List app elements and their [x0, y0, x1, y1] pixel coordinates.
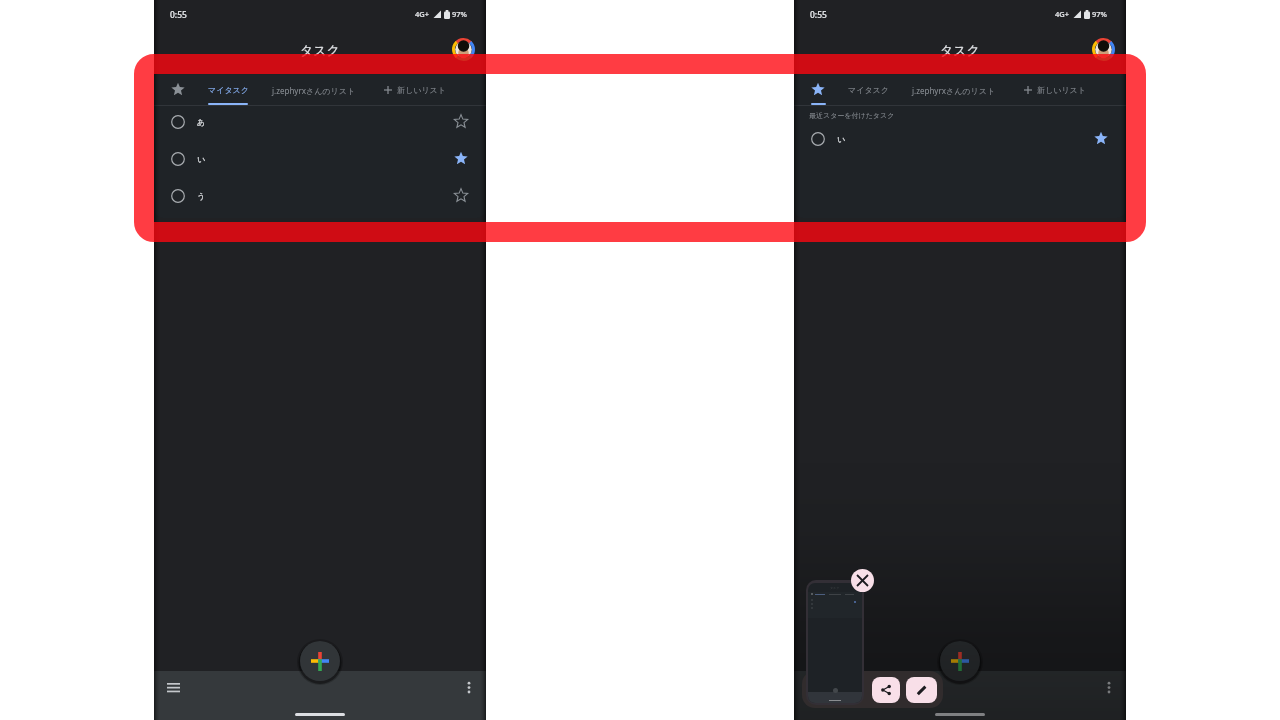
staticText: あ	[197, 117, 206, 127]
button[interactable]: Star task	[449, 110, 473, 134]
button[interactable]: Dismiss screenshot	[851, 569, 874, 592]
button[interactable]: う	[154, 177, 486, 214]
button[interactable]: Star task	[449, 147, 473, 171]
button[interactable]: Menu	[800, 674, 826, 700]
staticText: い	[837, 134, 846, 144]
button[interactable]: j.zephyrxさんのリスト	[907, 75, 1000, 105]
button[interactable]: い	[794, 120, 1126, 157]
button[interactable]: Screenshot preview	[806, 580, 864, 705]
button[interactable]: Starred tasks	[160, 75, 196, 105]
staticText: 97%	[452, 9, 467, 19]
staticText: j.zephyrxさんのリスト	[272, 85, 356, 96]
button[interactable]: Account	[452, 38, 475, 61]
button[interactable]: マイタスク	[204, 75, 252, 105]
button[interactable]: Star task	[449, 184, 473, 208]
button[interactable]: Edit screenshot	[906, 677, 937, 703]
button[interactable]: j.zephyrxさんのリスト	[267, 75, 360, 105]
staticText: 最近スターを付けたタスク	[809, 111, 895, 120]
staticText: タスク	[830, 586, 840, 590]
button[interactable]: Starred tasks	[800, 75, 836, 105]
staticText: j.zephyrxさんのリスト	[912, 85, 996, 96]
button[interactable]: 新しいリスト	[1022, 75, 1094, 105]
button[interactable]: Add task	[300, 641, 340, 681]
button[interactable]: 新しいリスト	[382, 75, 454, 105]
staticText: 新しいリスト	[1037, 85, 1086, 95]
staticText: 新しいリスト	[397, 85, 446, 95]
button[interactable]: あ	[154, 103, 486, 140]
staticText: マイタスク	[848, 85, 889, 95]
button[interactable]: い	[154, 140, 486, 177]
staticText: マイタスク	[208, 85, 249, 95]
staticText: タスク	[940, 42, 980, 58]
staticText: い	[197, 154, 206, 164]
button[interactable]: Share	[872, 677, 900, 703]
staticText: う	[197, 191, 206, 201]
button[interactable]: Menu	[160, 674, 186, 700]
button[interactable]: Star task	[1089, 127, 1113, 151]
staticText: 4G+	[1055, 9, 1070, 19]
button[interactable]: Account	[1092, 38, 1115, 61]
button[interactable]: More options	[1096, 674, 1122, 700]
staticText: 0:55	[810, 9, 827, 21]
button[interactable]: マイタスク	[844, 75, 892, 105]
staticText: 4G+	[415, 9, 430, 19]
staticText: タスク	[300, 42, 340, 58]
button[interactable]: More options	[456, 674, 482, 700]
button[interactable]: Add task	[940, 641, 980, 681]
staticText: 97%	[1092, 9, 1107, 19]
staticText: 0:55	[170, 9, 187, 21]
